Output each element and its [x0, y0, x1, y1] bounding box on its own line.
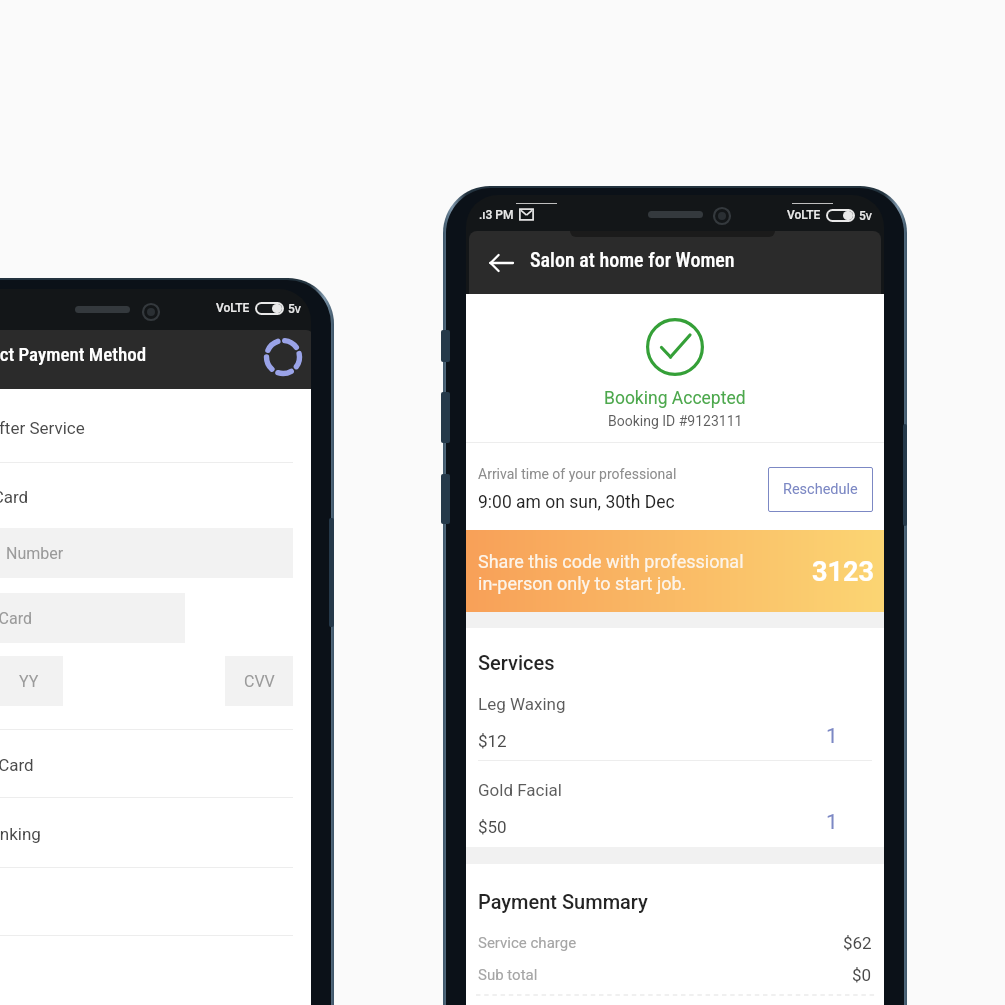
staticText: VoLTE	[216, 301, 250, 315]
button[interactable]: Gold Facial	[466, 780, 884, 800]
staticText: 5ᴠ	[859, 207, 872, 223]
staticText: Payment Summary	[478, 890, 648, 913]
button[interactable]: Share this code with professional	[466, 530, 884, 612]
button[interactable]: Name on Card	[0, 593, 185, 643]
staticText: Net Banking	[0, 824, 41, 844]
button[interactable]: Leg Waxing	[466, 694, 884, 714]
button[interactable]: Loading	[261, 335, 305, 379]
staticText: Credit Card	[0, 755, 34, 775]
staticText: Services	[478, 651, 555, 674]
button[interactable]: $50	[466, 817, 884, 842]
staticText: VoLTE	[787, 208, 821, 222]
staticText: YY	[19, 672, 39, 691]
staticText: Sub total	[478, 966, 538, 984]
button[interactable]: YY	[0, 656, 63, 706]
staticText: 9:00 am on sun, 30th Dec	[478, 492, 675, 513]
staticText: 1	[826, 810, 838, 835]
staticText: Arrival time of your professional	[478, 466, 677, 482]
staticText: Booking Accepted	[604, 388, 746, 409]
staticText: 1	[826, 724, 838, 749]
button[interactable]: Back	[489, 248, 519, 278]
button[interactable]: Debit Card	[0, 486, 311, 508]
button[interactable]: Reschedule	[768, 467, 873, 512]
staticText: 3123	[812, 556, 874, 588]
button[interactable]: Post After Service	[0, 417, 311, 439]
staticText: Select Payment Method	[0, 343, 147, 365]
staticText: $12	[478, 731, 507, 751]
button[interactable]: $12	[466, 731, 884, 756]
staticText: Debit Card	[0, 487, 29, 507]
staticText: $50	[478, 817, 507, 837]
staticText: Salon at home for Women	[530, 248, 735, 271]
staticText: .ı3 PM	[479, 208, 514, 222]
staticText: 5ᴠ	[288, 300, 301, 316]
staticText: Post After Service	[0, 418, 85, 438]
staticText: Leg Waxing	[478, 694, 566, 714]
staticText: CVV	[244, 672, 275, 691]
staticText: in-person only to start job.	[478, 573, 687, 594]
button[interactable]: Number	[0, 528, 293, 578]
staticText: $62	[843, 933, 872, 953]
staticText: Name on Card	[0, 609, 32, 628]
button[interactable]: CVV	[225, 656, 293, 706]
staticText: Service charge	[478, 934, 577, 952]
staticText: Reschedule	[783, 481, 858, 498]
button[interactable]: Select Payment Method	[0, 330, 311, 389]
button[interactable]: Credit Card	[0, 754, 311, 776]
button[interactable]: Net Banking	[0, 823, 311, 845]
staticText: Number	[6, 544, 64, 563]
staticText: Share this code with professional	[478, 551, 744, 572]
staticText: $0	[852, 965, 872, 985]
staticText: Booking ID #9123111	[608, 413, 743, 429]
staticText: Gold Facial	[478, 780, 562, 800]
